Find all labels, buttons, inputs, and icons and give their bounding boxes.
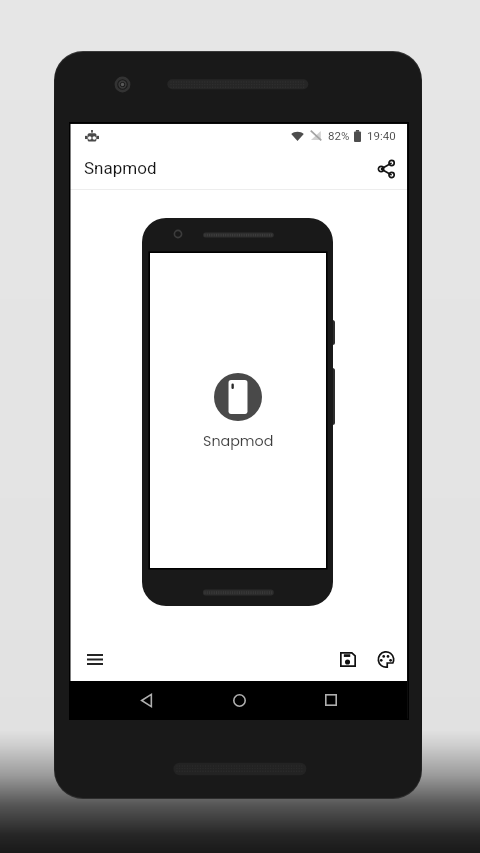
button[interactable]: Home [221, 682, 257, 718]
staticText: 82% [328, 129, 350, 142]
staticText: Snapmod [84, 158, 157, 178]
button[interactable]: Save [329, 640, 367, 678]
staticText: 19:40 [367, 129, 396, 142]
staticText: Snapmod [203, 431, 274, 451]
button[interactable]: Menu [76, 640, 114, 678]
button[interactable]: Share [369, 152, 403, 186]
button[interactable]: Theme [367, 640, 405, 678]
button[interactable]: Back [128, 682, 164, 718]
button[interactable]: Recents [313, 682, 349, 718]
